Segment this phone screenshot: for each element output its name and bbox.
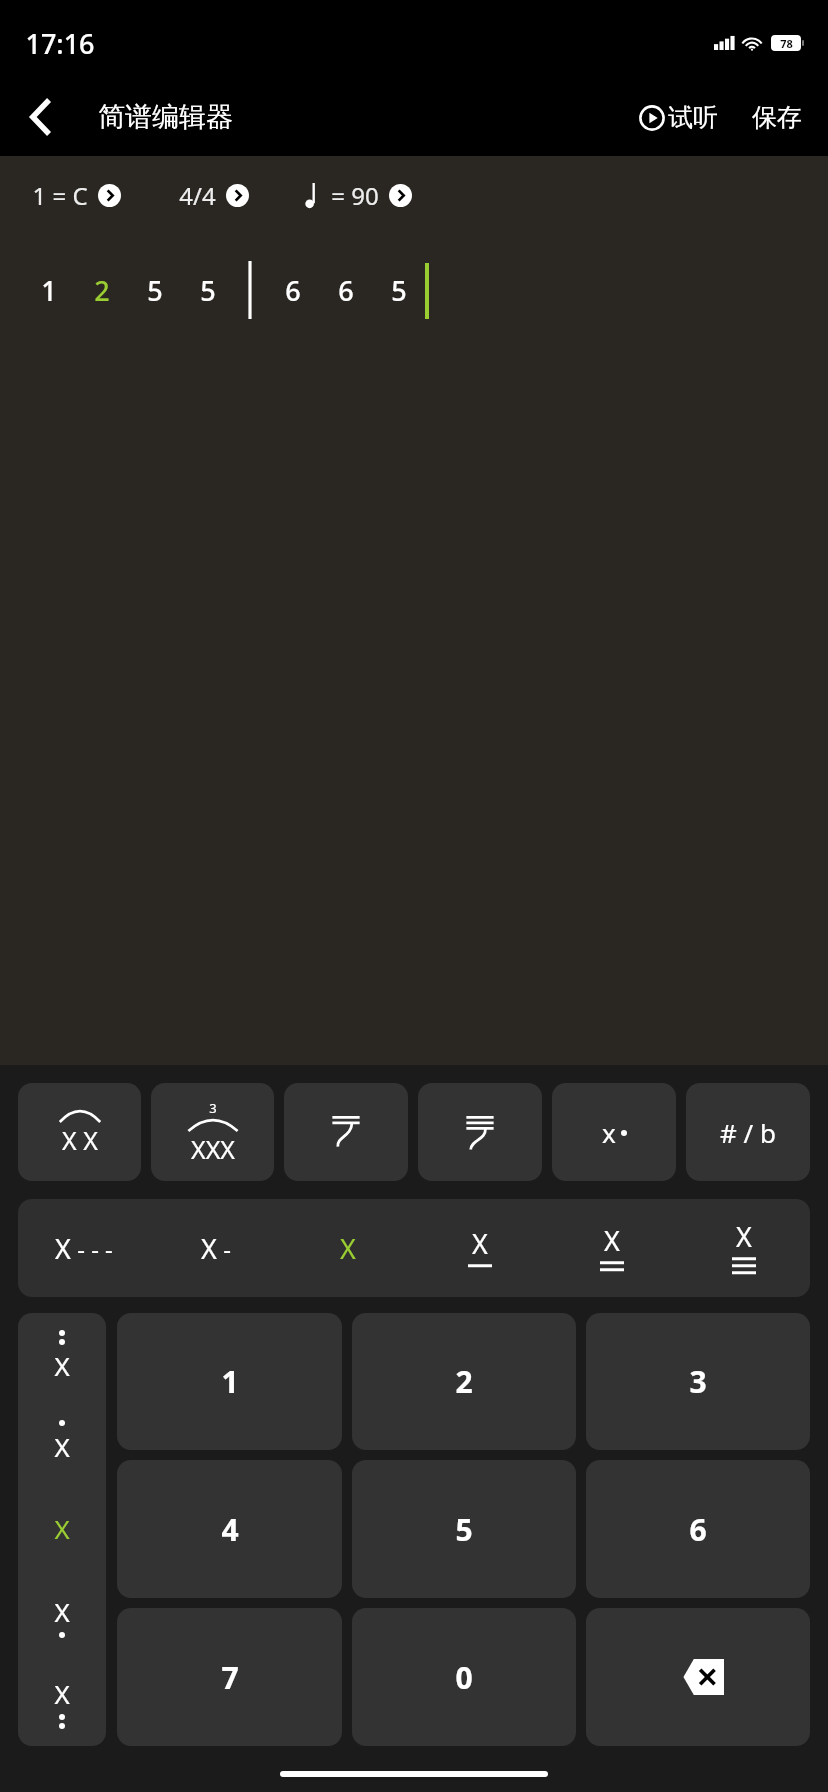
staticText: 1 = C (32, 179, 88, 212)
button[interactable]: 保存 (746, 94, 808, 141)
staticText: 3 (689, 1361, 707, 1402)
staticText: 5 (455, 1509, 473, 1550)
staticText: 试听 (668, 102, 718, 133)
button[interactable]: Symbol (552, 1083, 676, 1181)
staticText: 2 (455, 1361, 473, 1402)
button[interactable]: 4 (117, 1460, 342, 1598)
button[interactable]: Duration (18, 1199, 150, 1297)
staticText: 0 (455, 1657, 473, 1698)
staticText: # / b (720, 1115, 776, 1150)
staticText: X (54, 1429, 70, 1464)
staticText: X (736, 1218, 752, 1255)
button[interactable]: 7 (117, 1608, 342, 1746)
staticText: - - - (77, 1232, 113, 1265)
button[interactable]: Duration (546, 1199, 678, 1297)
button[interactable]: Duration (414, 1199, 546, 1297)
staticText: X (55, 1230, 71, 1267)
button[interactable]: Symbol (686, 1083, 810, 1181)
staticText: X (604, 1222, 620, 1259)
staticText: 1 (41, 272, 57, 309)
button[interactable]: 试听 (633, 94, 724, 141)
staticText: 6 (338, 272, 354, 309)
staticText: 4 (221, 1509, 239, 1550)
staticText: 保存 (752, 102, 802, 133)
button[interactable]: Symbol (18, 1083, 141, 1181)
button[interactable]: 5 (181, 234, 234, 329)
button[interactable]: 2 (352, 1313, 576, 1450)
button[interactable]: Symbol (284, 1083, 408, 1181)
staticText: XXX (191, 1132, 235, 1166)
staticText: - (223, 1232, 231, 1265)
staticText: 简谱编辑器 (98, 100, 233, 134)
button[interactable]: 5 (372, 234, 425, 329)
button[interactable]: Octave (18, 1399, 106, 1485)
button[interactable]: Duration (282, 1199, 414, 1297)
staticText: 5 (391, 272, 407, 309)
button[interactable]: Duration (678, 1199, 810, 1297)
staticText: X (54, 1676, 70, 1711)
button[interactable]: 6 (586, 1460, 810, 1598)
staticText: = 90 (331, 179, 379, 212)
staticText: 5 (200, 272, 216, 309)
button[interactable]: 2 (75, 234, 128, 329)
button[interactable]: 0 (352, 1608, 576, 1746)
button[interactable]: Symbol (151, 1083, 274, 1181)
staticText: X (472, 1225, 488, 1262)
button[interactable]: Octave (18, 1572, 106, 1659)
staticText: X (54, 1594, 70, 1629)
staticText: X (340, 1230, 356, 1267)
button[interactable]: Octave (18, 1313, 106, 1399)
staticText: 2 (94, 272, 110, 309)
staticText: 5 (147, 272, 163, 309)
button[interactable]: 1 = C (28, 175, 125, 216)
button[interactable]: Symbol (418, 1083, 542, 1181)
button[interactable]: = 90 (301, 175, 416, 216)
button[interactable]: 4/4 (175, 175, 253, 216)
staticText: x (602, 1115, 616, 1150)
staticText: X (54, 1348, 70, 1383)
button[interactable]: Octave (18, 1485, 106, 1572)
button[interactable]: Backspace (586, 1608, 810, 1746)
button[interactable]: Octave (18, 1659, 106, 1746)
staticText: 6 (285, 272, 301, 309)
button[interactable]: 1 (22, 234, 75, 329)
button[interactable]: 6 (319, 234, 372, 329)
staticText: X (201, 1230, 217, 1267)
staticText: 17:16 (25, 25, 95, 62)
button[interactable]: 6 (266, 234, 319, 329)
button[interactable]: 3 (586, 1313, 810, 1450)
staticText: 1 (221, 1361, 239, 1402)
staticText: 4/4 (179, 179, 216, 212)
button[interactable]: Back (14, 89, 70, 145)
button[interactable]: Duration (150, 1199, 282, 1297)
staticText: X X (62, 1123, 98, 1157)
button[interactable]: 1 (117, 1313, 342, 1450)
staticText: 6 (689, 1509, 707, 1550)
staticText: 3 (209, 1099, 217, 1117)
staticText: X (54, 1511, 70, 1546)
staticText: 78 (780, 36, 793, 51)
button[interactable]: 5 (128, 234, 181, 329)
staticText: 7 (221, 1657, 239, 1698)
button[interactable]: 5 (352, 1460, 576, 1598)
